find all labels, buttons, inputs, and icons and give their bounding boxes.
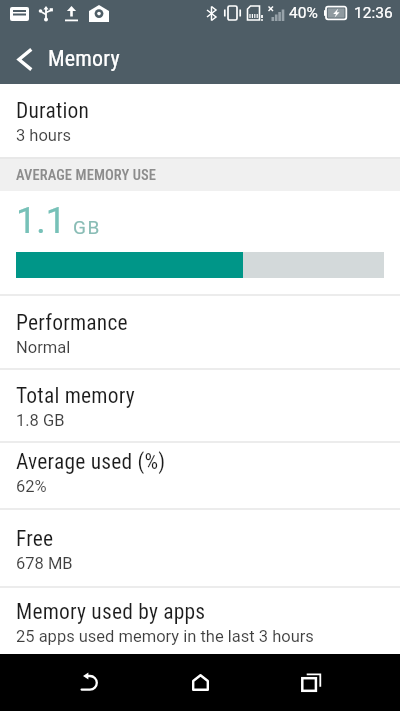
staticText: 62% <box>16 477 47 496</box>
staticText: Total memory <box>16 383 135 408</box>
button[interactable] <box>145 654 256 711</box>
staticText: 40% <box>289 4 318 22</box>
staticText: Performance <box>16 310 128 335</box>
button[interactable]: Free <box>0 510 400 586</box>
button[interactable]: Duration <box>0 84 400 157</box>
staticText: 678 MB <box>16 554 73 573</box>
button[interactable] <box>256 654 367 711</box>
button[interactable]: Average used (%) <box>0 443 400 508</box>
button[interactable] <box>0 35 48 83</box>
staticText: 25 apps used memory in the last 3 hours <box>16 627 314 646</box>
staticText: GB <box>73 216 101 238</box>
staticText: 1.1 <box>16 200 66 242</box>
staticText: AVERAGE MEMORY USE <box>16 167 157 184</box>
button[interactable] <box>34 654 145 711</box>
staticText: Duration <box>16 98 90 123</box>
staticText: Memory used by apps <box>16 599 206 624</box>
staticText: 12:36 <box>354 4 393 22</box>
button[interactable]: Total memory <box>0 370 400 441</box>
button[interactable]: Performance <box>0 296 400 368</box>
staticText: 3 hours <box>16 126 72 145</box>
staticText: Normal <box>16 338 71 357</box>
staticText: 1.8 GB <box>16 411 65 430</box>
staticText: Average used (%) <box>16 449 166 474</box>
staticText: Memory <box>48 46 120 72</box>
staticText: Free <box>16 526 54 551</box>
button[interactable]: Memory used by apps <box>0 588 400 654</box>
